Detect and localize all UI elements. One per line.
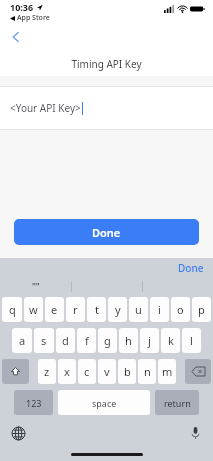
button[interactable]: l xyxy=(182,328,201,353)
staticText: m xyxy=(162,364,173,379)
staticText: j xyxy=(148,333,151,348)
button[interactable]: s xyxy=(34,328,54,353)
staticText: p xyxy=(198,302,205,317)
button[interactable]: space xyxy=(58,390,150,415)
button[interactable]: g xyxy=(98,328,117,353)
button[interactable]: v xyxy=(98,359,116,384)
staticText: Timing API Key xyxy=(71,57,142,71)
button[interactable]: y xyxy=(108,297,127,322)
button[interactable]: Done xyxy=(14,219,199,245)
staticText: w xyxy=(29,302,38,317)
staticText: y xyxy=(115,302,121,317)
staticText: a xyxy=(19,333,26,348)
staticText: 123 xyxy=(26,397,42,409)
staticText: b xyxy=(124,364,131,379)
button[interactable]: <Your API Key> xyxy=(0,87,213,129)
staticText: s xyxy=(41,333,47,348)
button[interactable]: w xyxy=(24,297,43,322)
button[interactable]: z xyxy=(38,359,56,384)
staticText: u xyxy=(135,302,142,317)
staticText: App Store xyxy=(17,13,50,23)
button[interactable]: a xyxy=(12,328,32,353)
button[interactable]: c xyxy=(78,359,96,384)
staticText: Done xyxy=(92,225,121,240)
button[interactable]: h xyxy=(119,328,138,353)
button[interactable]: return xyxy=(155,390,199,415)
button[interactable]: f xyxy=(77,328,96,353)
button[interactable]: o xyxy=(171,297,190,322)
staticText: e xyxy=(51,302,58,317)
button[interactable]: b xyxy=(118,359,136,384)
staticText: q xyxy=(9,302,16,317)
button[interactable]: Dictation xyxy=(185,423,205,443)
staticText: <Your API Key> xyxy=(10,101,81,115)
staticText: v xyxy=(104,364,110,379)
staticText: "" xyxy=(32,280,40,292)
button[interactable]: "" xyxy=(0,275,71,297)
button[interactable]: k xyxy=(161,328,180,353)
staticText: space xyxy=(92,397,117,409)
staticText: t xyxy=(95,302,99,317)
button[interactable]: n xyxy=(138,359,156,384)
button[interactable]: Shift xyxy=(2,359,29,384)
staticText: x xyxy=(64,364,70,379)
button[interactable]: Change keyboard xyxy=(8,423,28,443)
button[interactable]: e xyxy=(45,297,64,322)
staticText: o xyxy=(177,302,184,317)
staticText: h xyxy=(125,333,132,348)
button[interactable]: d xyxy=(56,328,75,353)
button[interactable]: m xyxy=(158,359,176,384)
staticText: r xyxy=(73,302,78,317)
staticText: k xyxy=(168,333,174,348)
staticText: l xyxy=(190,333,193,348)
button[interactable]: 123 xyxy=(14,390,53,415)
staticText: 10:36 xyxy=(10,1,34,13)
button[interactable]: Done xyxy=(178,261,204,275)
staticText: return xyxy=(164,397,191,409)
button[interactable]: Back xyxy=(4,25,28,49)
button[interactable]: r xyxy=(66,297,85,322)
staticText: i xyxy=(158,302,161,317)
button[interactable]: u xyxy=(129,297,148,322)
staticText: n xyxy=(144,364,151,379)
button[interactable]: p xyxy=(192,297,211,322)
staticText: f xyxy=(85,333,89,348)
staticText: g xyxy=(104,333,111,348)
staticText: z xyxy=(44,364,50,379)
button[interactable]: t xyxy=(87,297,106,322)
button[interactable]: j xyxy=(140,328,159,353)
button[interactable]: x xyxy=(58,359,76,384)
staticText: c xyxy=(84,364,90,379)
button[interactable]: q xyxy=(2,297,22,322)
button[interactable]: i xyxy=(150,297,169,322)
staticText: d xyxy=(62,333,69,348)
button[interactable]: Delete xyxy=(185,359,211,384)
